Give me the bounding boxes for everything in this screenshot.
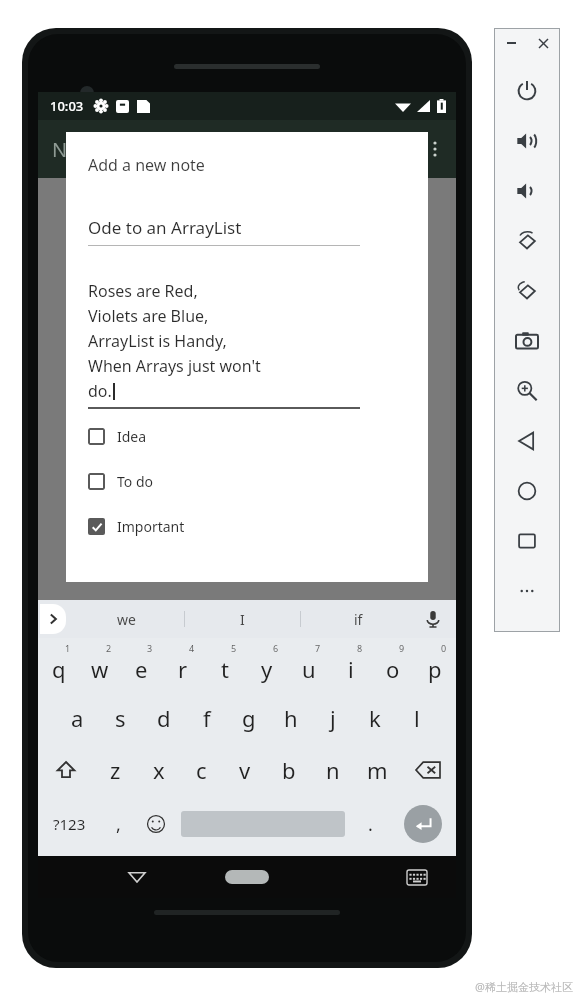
button[interactable]: f xyxy=(185,692,228,744)
staticText: To do xyxy=(117,472,153,491)
button[interactable]: Home xyxy=(225,870,269,884)
staticText: t xyxy=(221,654,229,684)
button[interactable]: c xyxy=(180,744,223,796)
button[interactable]: . xyxy=(351,796,389,852)
button[interactable]: 0 xyxy=(414,638,456,692)
button[interactable]: Home xyxy=(501,466,553,516)
button[interactable]: Voice input xyxy=(422,608,444,630)
button[interactable]: 5 xyxy=(204,638,246,692)
button[interactable]: s xyxy=(99,692,142,744)
staticText: x xyxy=(153,755,165,785)
button[interactable]: Volume up xyxy=(501,116,553,166)
button[interactable]: Power xyxy=(501,66,553,116)
button[interactable]: Screenshot xyxy=(501,316,553,366)
button[interactable]: if xyxy=(301,600,416,638)
staticText: q xyxy=(52,654,66,684)
staticText: 5 xyxy=(231,642,237,654)
staticText: p xyxy=(428,654,442,684)
button[interactable]: Rotate right xyxy=(501,266,553,316)
staticText: f xyxy=(203,703,211,733)
button[interactable]: x xyxy=(137,744,180,796)
staticText: n xyxy=(326,755,340,785)
button[interactable]: Back xyxy=(124,864,150,890)
staticText: y xyxy=(261,654,273,684)
staticText: d xyxy=(157,703,171,733)
button[interactable]: Zoom xyxy=(501,366,553,416)
staticText: r xyxy=(178,654,188,684)
button[interactable]: 8 xyxy=(330,638,372,692)
button[interactable]: 7 xyxy=(288,638,330,692)
button[interactable]: v xyxy=(223,744,267,796)
staticText: w xyxy=(91,654,109,684)
staticText: m xyxy=(367,755,388,785)
staticText: c xyxy=(196,755,207,785)
button[interactable]: h xyxy=(270,692,312,744)
staticText: , xyxy=(116,812,121,837)
button[interactable]: Enter xyxy=(389,796,456,852)
staticText: When Arrays just won't xyxy=(88,355,261,377)
button[interactable]: Idea xyxy=(88,425,147,448)
other: More options xyxy=(426,140,444,158)
button[interactable]: j xyxy=(312,692,354,744)
button[interactable]: 9 xyxy=(372,638,414,692)
button[interactable]: More xyxy=(501,566,553,616)
staticText: u xyxy=(302,654,316,684)
button[interactable]: Volume down xyxy=(501,166,553,216)
button[interactable]: Backspace xyxy=(399,744,456,796)
button[interactable]: Important xyxy=(88,515,185,538)
button[interactable]: g xyxy=(228,692,270,744)
button[interactable]: , xyxy=(100,796,137,852)
button[interactable]: Space xyxy=(175,796,351,852)
staticText: @稀土掘金技术社区 xyxy=(475,979,573,994)
button[interactable]: To do xyxy=(88,470,153,493)
staticText: 2 xyxy=(106,642,112,654)
staticText: 10:03 xyxy=(50,97,84,115)
staticText: Important xyxy=(117,517,185,536)
button[interactable]: Overview xyxy=(501,516,553,566)
staticText: ?123 xyxy=(53,814,86,834)
button[interactable]: ?123 xyxy=(38,796,100,852)
staticText: . xyxy=(368,812,373,837)
staticText: 7 xyxy=(315,642,321,654)
button[interactable]: 2 xyxy=(79,638,120,692)
button[interactable]: l xyxy=(396,692,438,744)
staticText: 0 xyxy=(441,642,447,654)
button[interactable]: Back xyxy=(501,416,553,466)
staticText: do. xyxy=(88,380,112,402)
button[interactable]: Emoji xyxy=(137,796,175,852)
button[interactable]: a xyxy=(56,692,99,744)
button[interactable]: Close xyxy=(535,35,551,51)
button[interactable]: d xyxy=(142,692,185,744)
staticText: 9 xyxy=(399,642,405,654)
button[interactable]: we xyxy=(68,600,184,638)
staticText: we xyxy=(117,610,136,629)
staticText: 4 xyxy=(189,642,195,654)
button[interactable]: 4 xyxy=(162,638,204,692)
button[interactable]: Shift xyxy=(38,744,94,796)
button[interactable]: m xyxy=(355,744,399,796)
button[interactable]: b xyxy=(267,744,311,796)
staticText: I xyxy=(240,610,245,629)
staticText: k xyxy=(369,703,381,733)
button[interactable]: Rotate left xyxy=(501,216,553,266)
staticText: v xyxy=(239,755,251,785)
button[interactable]: n xyxy=(311,744,355,796)
staticText: Add a new note xyxy=(88,154,205,176)
button[interactable]: z xyxy=(94,744,137,796)
button[interactable]: Minimize xyxy=(503,35,519,51)
button[interactable]: 6 xyxy=(246,638,288,692)
button[interactable]: Expand suggestions xyxy=(40,604,66,634)
button[interactable]: k xyxy=(354,692,396,744)
staticText: z xyxy=(110,755,121,785)
staticText: ArrayList is Handy, xyxy=(88,330,227,352)
staticText: a xyxy=(71,703,84,733)
staticText: o xyxy=(386,654,400,684)
button[interactable]: I xyxy=(185,600,300,638)
staticText: Idea xyxy=(117,427,147,446)
staticText: h xyxy=(284,703,298,733)
button[interactable]: 3 xyxy=(120,638,162,692)
button[interactable]: 1 xyxy=(38,638,79,692)
staticText: if xyxy=(354,610,363,629)
staticText: i xyxy=(348,654,354,684)
button[interactable]: Hide keyboard xyxy=(404,864,430,890)
